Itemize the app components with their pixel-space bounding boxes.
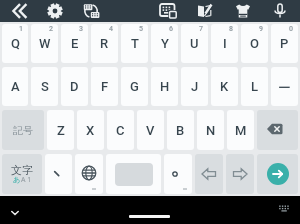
staticText: O [250, 36, 259, 51]
button[interactable]: N [197, 110, 224, 150]
button[interactable]: C [107, 110, 134, 150]
staticText: P [280, 36, 289, 51]
staticText: A 1 [21, 175, 32, 185]
button[interactable]: F [91, 67, 118, 106]
button[interactable]: G [121, 67, 148, 106]
button[interactable] [157, 0, 179, 22]
staticText: ー [278, 79, 291, 95]
button[interactable] [269, 0, 291, 22]
button[interactable]: P [271, 24, 298, 63]
staticText: E [71, 36, 79, 51]
staticText: Y [161, 36, 169, 51]
button[interactable]: Q [2, 24, 28, 63]
button[interactable]: W [31, 24, 58, 63]
staticText: V [146, 123, 155, 138]
button[interactable] [75, 154, 103, 194]
staticText: 文字 [11, 163, 33, 177]
button[interactable] [8, 0, 30, 22]
staticText: W [39, 36, 51, 51]
staticText: あ [13, 175, 21, 184]
button[interactable]: 文字 [2, 154, 42, 194]
button[interactable]: Z [47, 110, 74, 150]
staticText: 8 [229, 25, 233, 33]
button[interactable] [164, 154, 192, 194]
staticText: J [191, 79, 199, 94]
button[interactable]: K [211, 67, 238, 106]
button[interactable]: I [211, 24, 238, 63]
staticText: A [11, 79, 20, 94]
button[interactable]: O [241, 24, 268, 63]
staticText: 2 [49, 25, 53, 33]
staticText: G [130, 79, 139, 94]
staticText: M [235, 123, 247, 138]
button[interactable]: U [181, 24, 208, 63]
staticText: Q [11, 36, 20, 51]
button[interactable]: E [61, 24, 88, 63]
staticText: 6 [169, 25, 173, 33]
button[interactable]: Y [151, 24, 178, 63]
staticText: 7 [199, 25, 203, 33]
button[interactable] [45, 154, 72, 194]
button[interactable] [257, 110, 298, 150]
staticText: I [223, 36, 227, 51]
staticText: 9 [259, 25, 263, 33]
staticText: 記号 [13, 124, 33, 137]
staticText: U [190, 36, 199, 51]
button[interactable] [44, 0, 66, 22]
staticText: B [176, 123, 185, 138]
staticText: 3 [79, 25, 83, 33]
button[interactable] [273, 198, 295, 220]
staticText: N [206, 123, 216, 138]
button[interactable]: M [227, 110, 254, 150]
button[interactable]: X [77, 110, 104, 150]
button[interactable]: R [91, 24, 118, 63]
staticText: 5 [139, 25, 143, 33]
button[interactable] [4, 202, 26, 224]
button[interactable]: D [61, 67, 88, 106]
button[interactable] [80, 0, 102, 22]
staticText: Z [57, 123, 65, 138]
button[interactable]: T [121, 24, 148, 63]
button[interactable]: ー [271, 67, 298, 106]
staticText: 4 [109, 25, 113, 33]
button[interactable] [195, 154, 223, 194]
staticText: K [220, 79, 229, 94]
staticText: S [41, 79, 49, 94]
staticText: H [160, 79, 170, 94]
staticText: X [86, 123, 95, 138]
staticText: L [251, 79, 259, 94]
staticText: 0 [289, 25, 293, 33]
button[interactable]: J [181, 67, 208, 106]
button[interactable]: S [31, 67, 58, 106]
staticText: C [116, 123, 125, 138]
button[interactable] [106, 154, 161, 194]
button[interactable]: V [137, 110, 164, 150]
button[interactable]: A [2, 67, 28, 106]
button[interactable] [232, 0, 254, 22]
staticText: R [100, 36, 109, 51]
staticText: D [70, 79, 79, 94]
button[interactable]: 記号 [2, 110, 44, 150]
staticText: 1 [19, 25, 23, 33]
staticText: F [101, 79, 109, 94]
button[interactable] [226, 154, 254, 194]
button[interactable] [129, 215, 170, 218]
button[interactable] [194, 0, 216, 22]
button[interactable]: B [167, 110, 194, 150]
button[interactable] [257, 154, 298, 194]
button[interactable]: L [241, 67, 268, 106]
staticText: T [131, 36, 139, 51]
button[interactable]: H [151, 67, 178, 106]
